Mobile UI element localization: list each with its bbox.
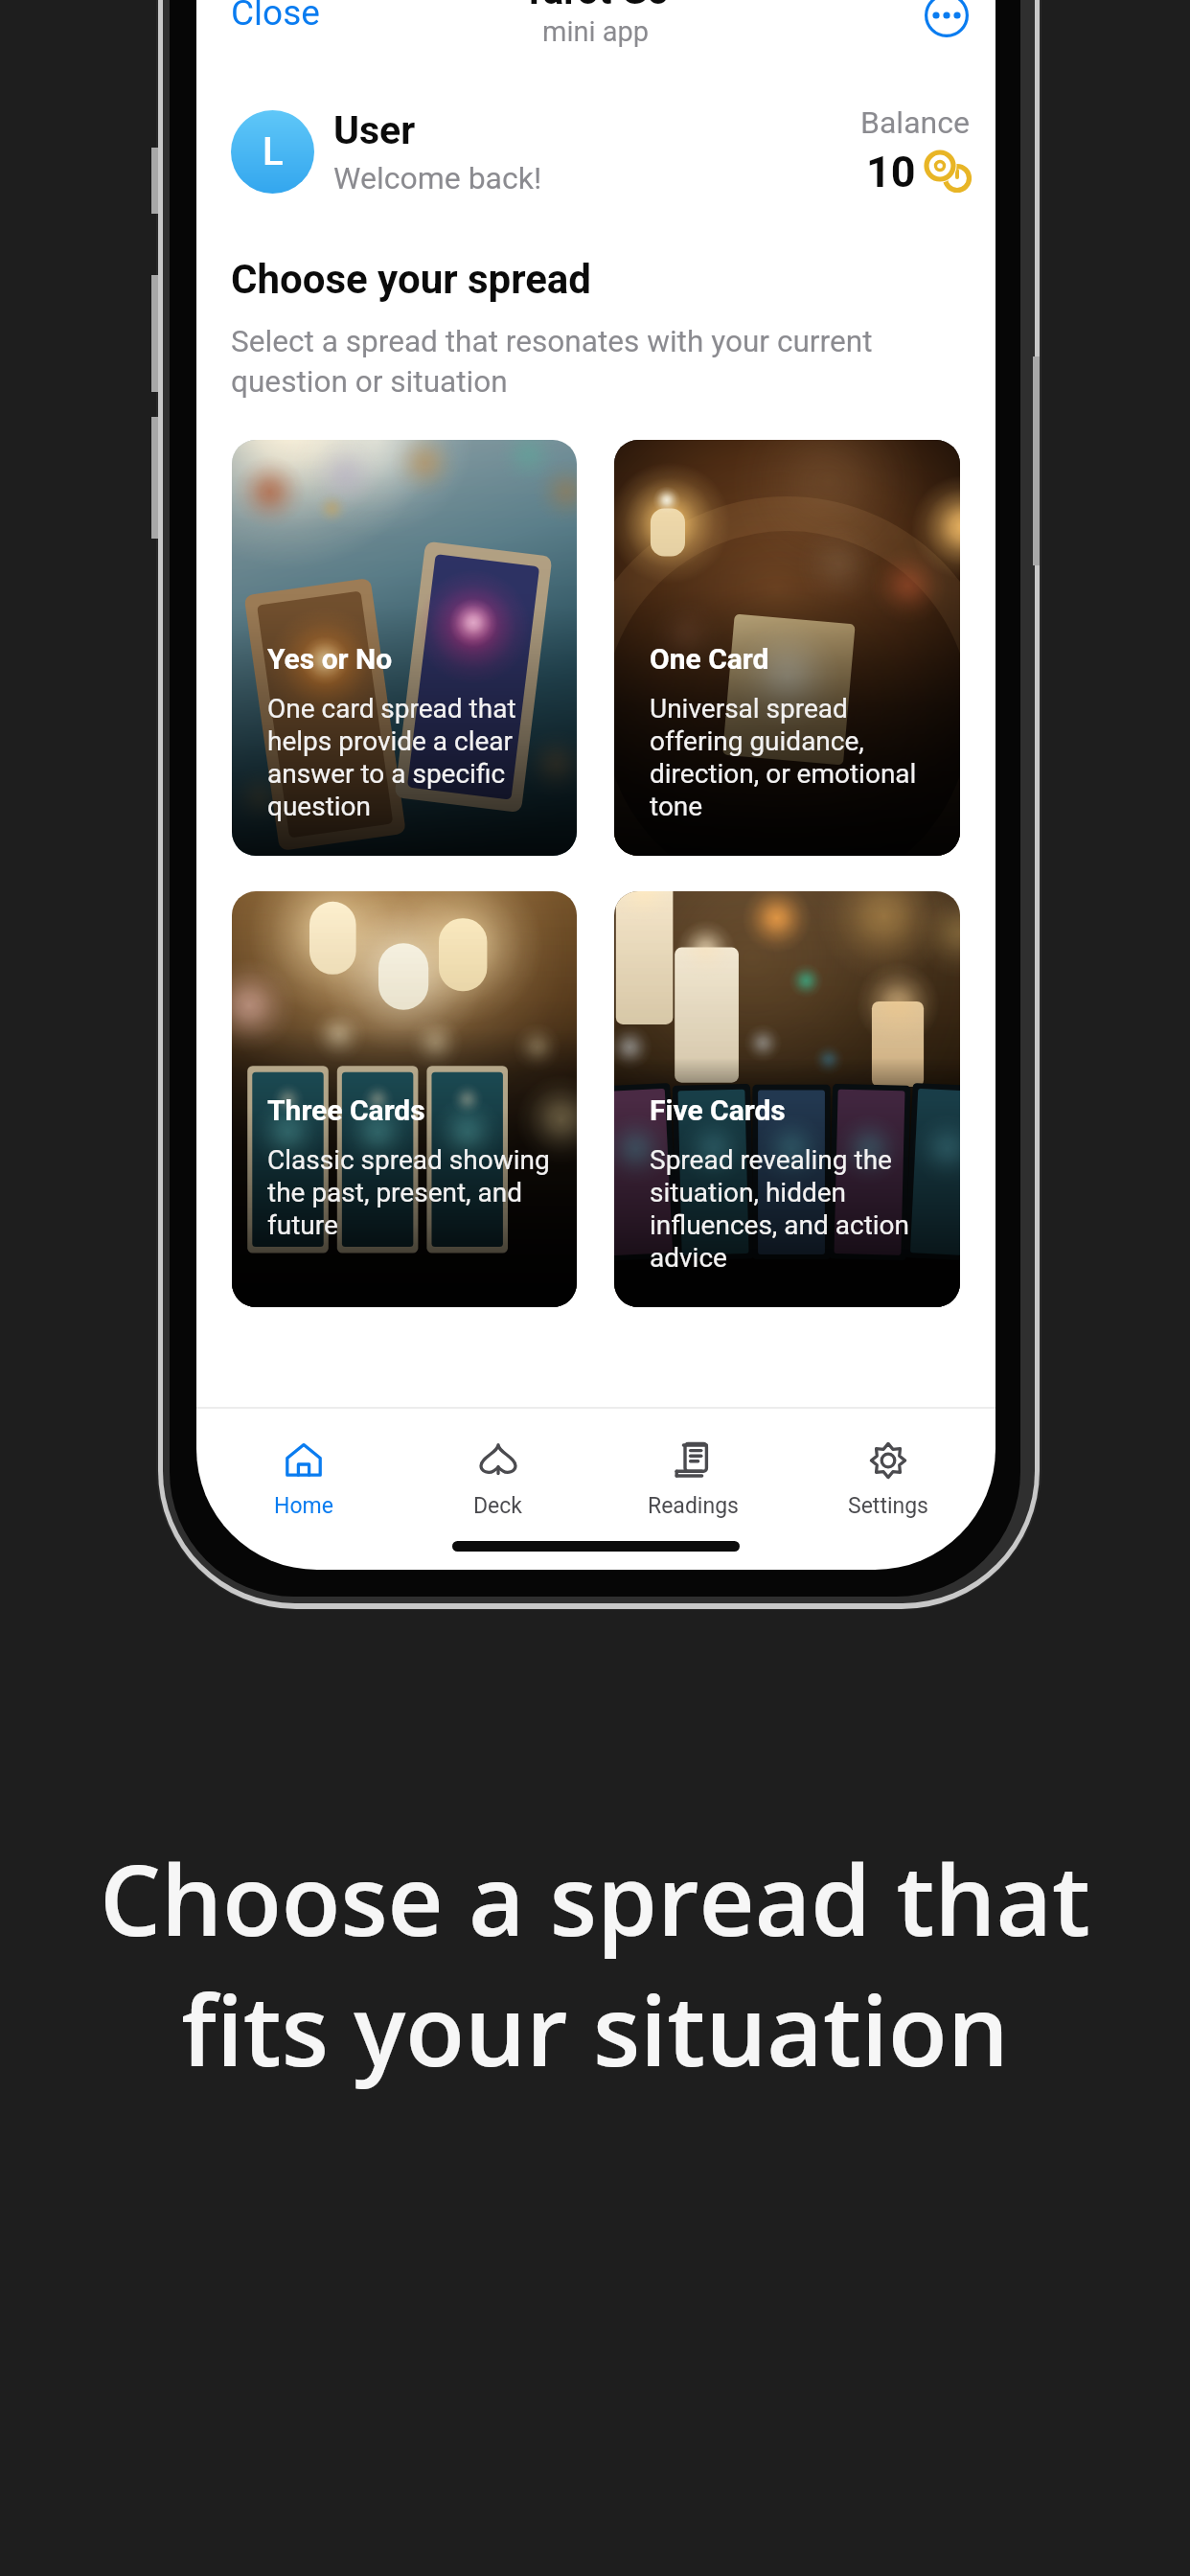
staticText: Select a spread that resonates with your… <box>231 324 873 400</box>
button[interactable]: Close <box>231 0 320 34</box>
staticText: Welcome back! <box>333 160 542 196</box>
button[interactable]: More options <box>925 0 969 37</box>
staticText: Classic spread showing the past, present… <box>267 1144 563 1241</box>
staticText: Readings <box>648 1493 739 1519</box>
staticText: One card spread that helps provide a cle… <box>267 693 563 822</box>
staticText: Five Cards <box>650 1093 786 1127</box>
staticText: One Card <box>650 642 769 676</box>
button[interactable]: Three Cards <box>232 891 577 1307</box>
staticText: Choose a spread that fits your situation <box>53 1832 1137 2094</box>
staticText: User <box>333 107 416 153</box>
staticText: Balance <box>860 104 970 141</box>
staticText: 10 <box>866 147 916 194</box>
button[interactable]: Deck <box>400 1409 595 1519</box>
button[interactable]: Five Cards <box>614 891 960 1307</box>
staticText: Universal spread offering guidance, dire… <box>650 693 947 822</box>
button[interactable]: Home <box>206 1409 400 1519</box>
button[interactable]: One Card <box>614 440 960 856</box>
button[interactable]: Settings <box>790 1409 986 1519</box>
staticText: Settings <box>848 1493 928 1519</box>
button[interactable]: Readings <box>595 1409 790 1519</box>
staticText: Home <box>274 1493 333 1519</box>
staticText: Tarot Go <box>522 0 670 13</box>
staticText: Three Cards <box>267 1093 425 1127</box>
staticText: Deck <box>473 1493 522 1519</box>
staticText: mini app <box>542 15 650 48</box>
staticText: Spread revealing the situation, hidden i… <box>650 1144 947 1274</box>
button[interactable]: Yes or No <box>232 440 577 856</box>
staticText: Yes or No <box>267 642 393 676</box>
staticText: Choose your spread <box>231 256 591 303</box>
staticText: L <box>263 129 284 174</box>
